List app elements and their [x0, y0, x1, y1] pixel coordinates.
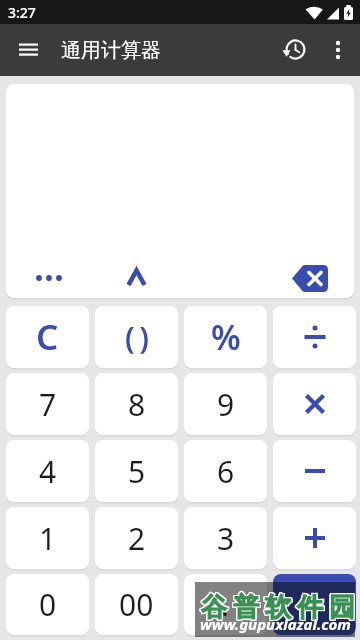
- button[interactable]: [273, 574, 356, 635]
- button[interactable]: 7: [6, 373, 89, 435]
- staticText: 谷普软件园: [198, 592, 358, 625]
- button[interactable]: %: [184, 306, 267, 368]
- button[interactable]: 3: [184, 507, 267, 569]
- staticText: 1: [39, 518, 57, 559]
- button[interactable]: [4, 26, 48, 74]
- staticText: 4: [39, 451, 57, 492]
- button[interactable]: [6, 254, 93, 296]
- button[interactable]: 5: [95, 440, 178, 502]
- staticText: 谷普软件园: [199, 590, 359, 623]
- button[interactable]: [267, 254, 354, 296]
- button[interactable]: 8: [95, 373, 178, 435]
- staticText: 谷普软件园: [198, 590, 358, 623]
- staticText: 6: [217, 451, 235, 492]
- button[interactable]: [273, 306, 356, 368]
- staticText: C: [36, 313, 59, 361]
- staticText: %: [211, 314, 241, 360]
- staticText: 5: [128, 451, 146, 492]
- staticText: .: [221, 584, 230, 625]
- staticText: 8: [128, 384, 146, 425]
- staticText: 谷普软件园: [198, 591, 358, 624]
- staticText: 3:27: [8, 3, 36, 22]
- staticText: 7: [39, 384, 57, 425]
- staticText: 谷普软件园: [197, 591, 357, 624]
- staticText: 00: [119, 584, 154, 625]
- staticText: 谷普软件园: [197, 592, 357, 625]
- button[interactable]: 6: [184, 440, 267, 502]
- button[interactable]: [273, 373, 356, 435]
- staticText: 2: [128, 518, 146, 559]
- staticText: (): [125, 317, 154, 358]
- staticText: 谷普软件园: [197, 590, 357, 623]
- staticText: www.gupuxlazal.com: [200, 614, 351, 634]
- button[interactable]: C: [6, 306, 89, 368]
- button[interactable]: 1: [6, 507, 89, 569]
- button[interactable]: 4: [6, 440, 89, 502]
- button[interactable]: .: [184, 574, 267, 635]
- button[interactable]: 0: [6, 574, 89, 635]
- button[interactable]: 2: [95, 507, 178, 569]
- staticText: 通用计算器: [61, 38, 161, 63]
- button[interactable]: (): [95, 306, 178, 368]
- button[interactable]: 9: [184, 373, 267, 435]
- button[interactable]: [320, 30, 360, 70]
- staticText: 谷普软件园: [199, 591, 359, 624]
- staticText: 3: [217, 518, 235, 559]
- button[interactable]: [273, 507, 356, 569]
- button[interactable]: [93, 254, 180, 296]
- staticText: 0: [39, 584, 57, 625]
- button[interactable]: 00: [95, 574, 178, 635]
- button[interactable]: [273, 440, 356, 502]
- staticText: 9: [217, 384, 235, 425]
- staticText: 谷普软件园: [199, 592, 359, 625]
